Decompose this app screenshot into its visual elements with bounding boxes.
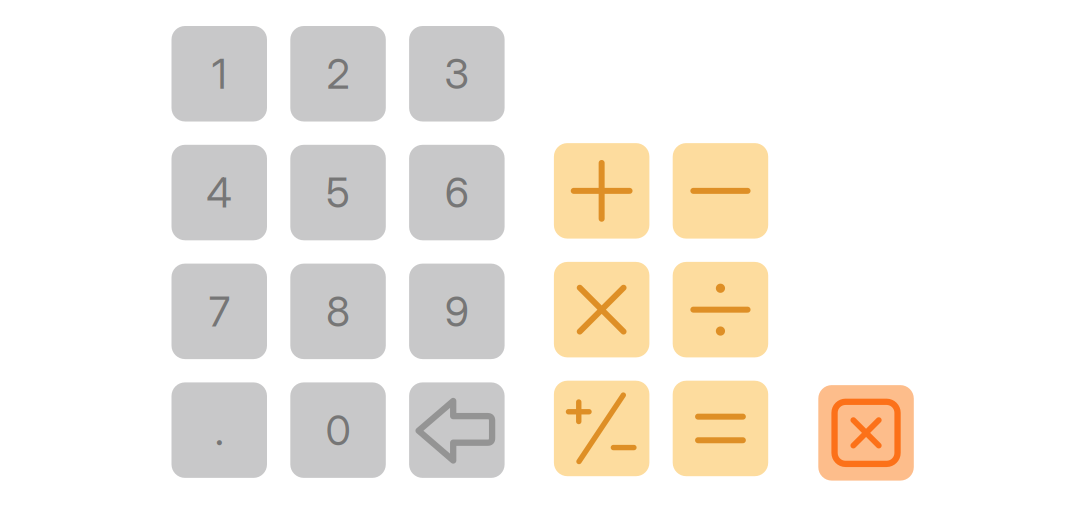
staticText: 5 <box>326 167 350 217</box>
staticText: 2 <box>327 49 350 99</box>
staticText: 6 <box>445 167 469 217</box>
staticText: 1 <box>212 49 227 99</box>
button[interactable]: 5 <box>0 0 1084 506</box>
staticText: 7 <box>209 286 230 336</box>
button[interactable]: Divide <box>0 0 1084 506</box>
staticText: 3 <box>444 49 469 99</box>
button[interactable]: Multiply <box>0 0 1084 506</box>
staticText: 9 <box>445 286 469 336</box>
button[interactable]: 2 <box>0 0 1084 506</box>
button[interactable]: . <box>0 0 1084 506</box>
button[interactable]: 3 <box>0 0 1084 506</box>
staticText: . <box>215 405 224 455</box>
button[interactable]: 4 <box>0 0 1084 506</box>
button[interactable]: 7 <box>0 0 1084 506</box>
button[interactable]: 0 <box>0 0 1084 506</box>
button[interactable]: Toggle sign <box>0 0 1084 506</box>
button[interactable]: Delete <box>0 0 1084 506</box>
button[interactable]: Add <box>0 0 1084 506</box>
button[interactable]: 9 <box>0 0 1084 506</box>
staticText: 8 <box>326 286 350 336</box>
button[interactable]: 6 <box>0 0 1084 506</box>
staticText: 4 <box>206 167 232 217</box>
staticText: 0 <box>326 405 351 455</box>
button[interactable]: Subtract <box>0 0 1084 506</box>
button[interactable]: 8 <box>0 0 1084 506</box>
button[interactable]: Equals <box>0 0 1084 506</box>
button[interactable]: Clear <box>0 0 1084 506</box>
button[interactable]: 1 <box>0 0 1084 506</box>
